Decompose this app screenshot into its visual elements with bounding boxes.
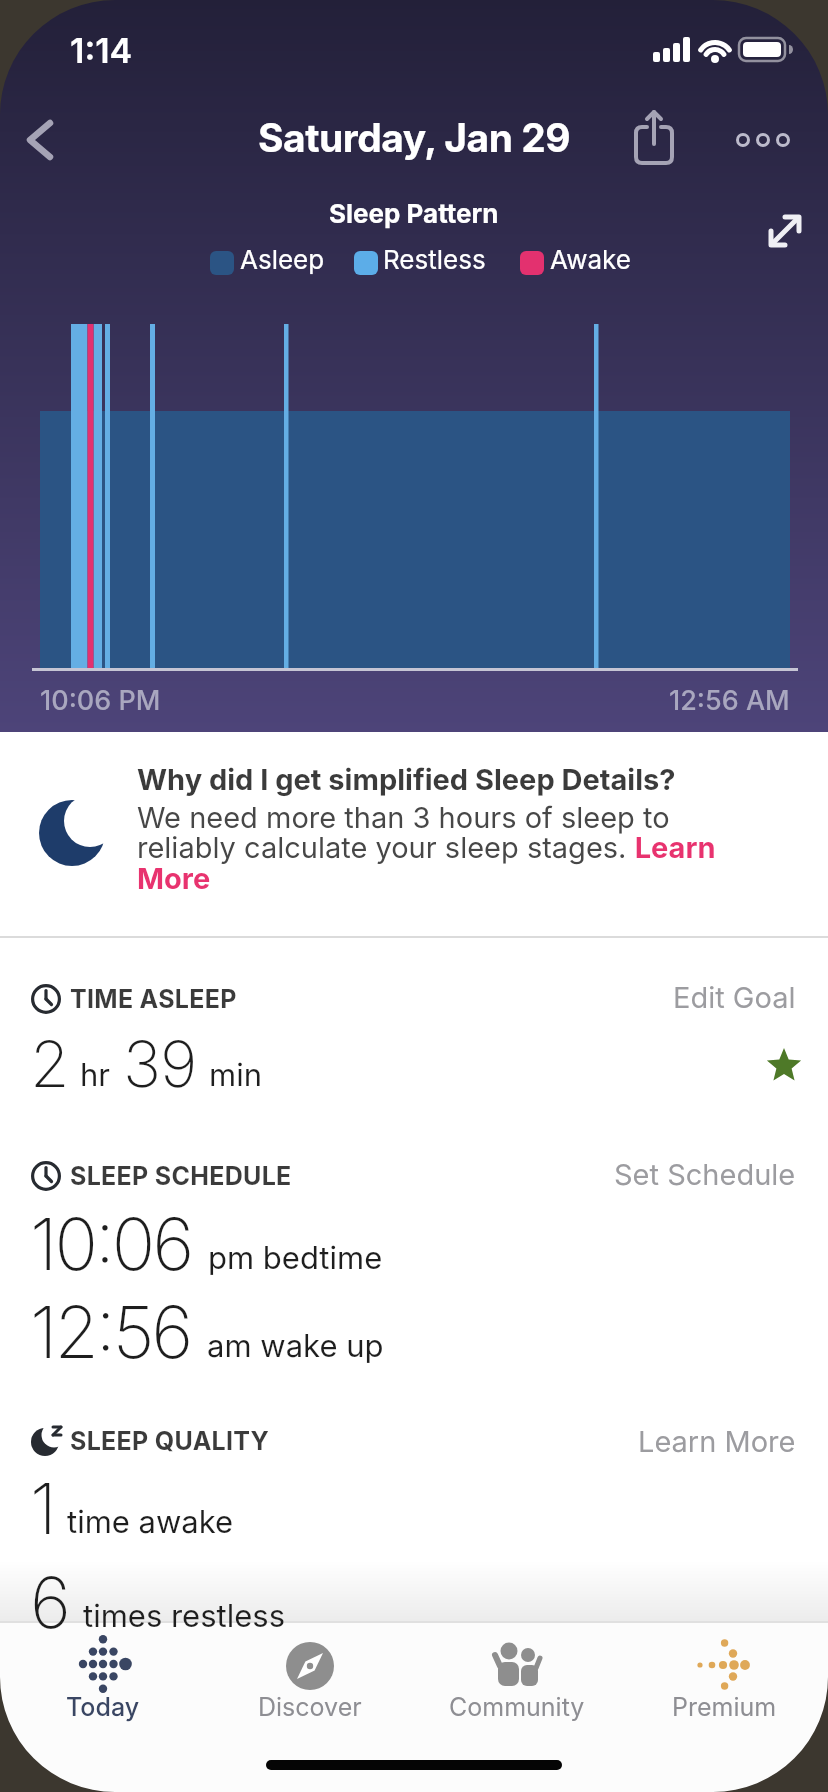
- staticText: 12:56: [30, 1288, 191, 1375]
- staticText: Community: [449, 1692, 585, 1722]
- staticText: min: [209, 1056, 262, 1094]
- staticText: SLEEP QUALITY: [70, 1426, 270, 1456]
- staticText: Today: [66, 1692, 140, 1722]
- staticText: We need more than 3 hours of sleep to re…: [137, 800, 722, 896]
- button[interactable]: Community: [417, 1638, 617, 1738]
- button[interactable]: Learn More: [638, 1424, 796, 1459]
- staticText: 10:06 PM: [40, 684, 161, 717]
- staticText: 39: [123, 1025, 197, 1102]
- staticText: Asleep: [240, 244, 325, 275]
- button[interactable]: [753, 199, 817, 263]
- staticText: Sleep Pattern: [329, 198, 499, 229]
- staticText: Discover: [258, 1692, 362, 1722]
- staticText: times restless: [83, 1597, 285, 1635]
- staticText: TIME ASLEEP: [70, 984, 237, 1014]
- button[interactable]: Discover: [210, 1638, 410, 1738]
- staticText: 1: [30, 1466, 57, 1551]
- staticText: Premium: [672, 1692, 777, 1722]
- staticText: pm bedtime: [208, 1239, 383, 1277]
- staticText: Why did I get simplified Sleep Details?: [137, 762, 797, 797]
- staticText: SLEEP SCHEDULE: [70, 1161, 292, 1191]
- button[interactable]: Edit Goal: [673, 980, 796, 1015]
- staticText: hr: [80, 1056, 111, 1094]
- staticText: Saturday, Jan 29: [258, 114, 571, 161]
- staticText: 6: [30, 1560, 71, 1645]
- staticText: Restless: [383, 244, 486, 275]
- staticText: am wake up: [207, 1327, 384, 1365]
- staticText: Awake: [550, 244, 631, 275]
- staticText: Set Schedule: [614, 1157, 796, 1192]
- staticText: Learn More: [638, 1424, 796, 1459]
- staticText: 2: [30, 1025, 70, 1102]
- button[interactable]: Set Schedule: [614, 1157, 796, 1192]
- button[interactable]: [10, 105, 70, 175]
- button[interactable]: Premium: [624, 1638, 824, 1738]
- staticText: time awake: [67, 1503, 234, 1541]
- button[interactable]: [725, 117, 805, 161]
- button[interactable]: [626, 104, 682, 172]
- button[interactable]: Today: [3, 1638, 203, 1738]
- staticText: 1:14: [70, 30, 133, 71]
- staticText: Edit Goal: [673, 980, 796, 1015]
- staticText: 10:06: [30, 1200, 192, 1287]
- staticText: 12:56 AM: [669, 684, 790, 717]
